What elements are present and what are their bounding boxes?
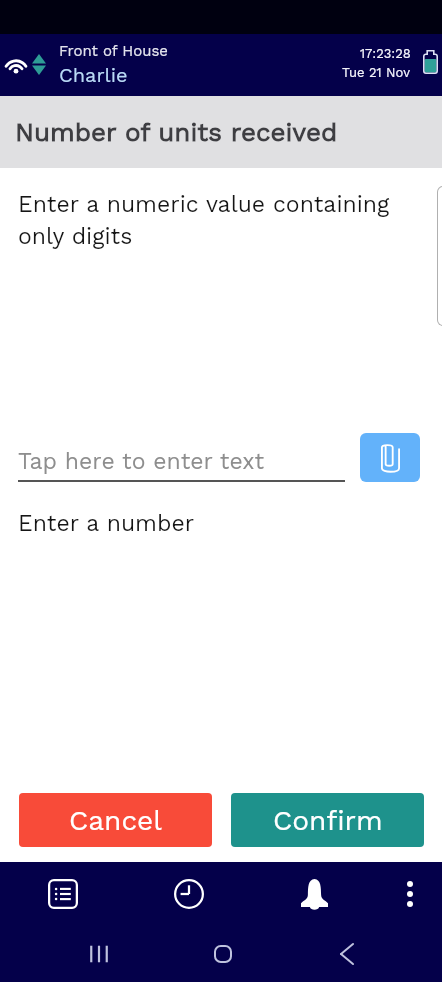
button[interactable]: Orders xyxy=(0,862,126,926)
button[interactable]: Notifications xyxy=(251,862,377,926)
staticText: 17:23:28 xyxy=(360,46,411,61)
staticText: Front of House xyxy=(59,42,168,60)
staticText: Confirm xyxy=(273,804,383,837)
staticText: Enter a number xyxy=(18,510,195,537)
staticText: Number of units received xyxy=(15,117,338,147)
staticText: Tap here to enter text xyxy=(18,448,265,475)
button[interactable]: Back xyxy=(317,926,377,982)
button[interactable]: Attach file xyxy=(360,433,420,482)
staticText: Cancel xyxy=(69,804,162,837)
staticText: Enter a numeric value containing only di… xyxy=(18,191,392,249)
button[interactable]: Home xyxy=(193,926,253,982)
staticText: Charlie xyxy=(59,63,128,86)
button[interactable]: History xyxy=(126,862,251,926)
button[interactable]: Cancel xyxy=(19,793,212,847)
button[interactable]: More options xyxy=(377,862,442,926)
staticText: Tue 21 Nov xyxy=(342,65,411,80)
button[interactable]: Confirm xyxy=(231,793,424,847)
button[interactable]: Recents xyxy=(69,926,129,982)
